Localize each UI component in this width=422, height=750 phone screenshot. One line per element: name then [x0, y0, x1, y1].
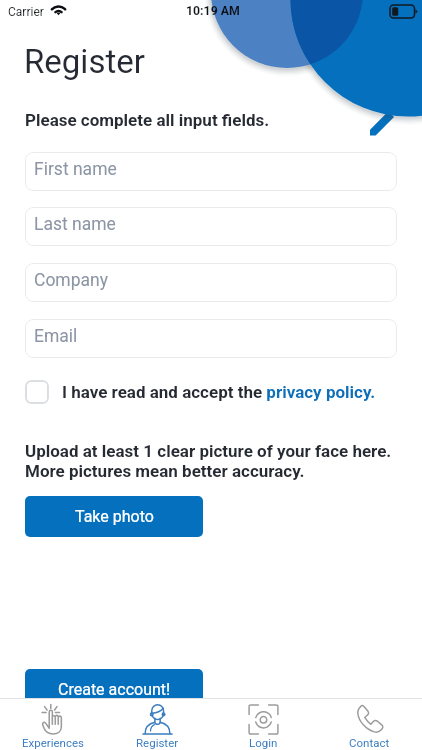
button[interactable]: Experiences — [0, 699, 105, 750]
button[interactable]: Create account! — [25, 669, 203, 710]
button[interactable]: Email — [25, 319, 397, 358]
staticText: Experiences — [22, 736, 84, 749]
button[interactable]: Company — [25, 263, 397, 302]
button[interactable]: Login — [210, 699, 316, 750]
button[interactable]: Register — [105, 699, 210, 750]
staticText: Carrier — [8, 5, 44, 19]
staticText: Register — [136, 736, 179, 749]
staticText: Email — [34, 326, 78, 347]
button[interactable]: Accept privacy policy — [25, 380, 49, 404]
staticText: 10:19 AM — [186, 4, 240, 18]
staticText: More pictures mean better accuracy. — [25, 461, 305, 481]
staticText: Register — [24, 42, 145, 81]
button[interactable]: First name — [25, 152, 397, 191]
staticText: Take photo — [75, 507, 154, 526]
staticText: Last name — [34, 214, 116, 235]
button[interactable]: I have read and accept the privacy polic… — [62, 382, 376, 402]
staticText: Please complete all input fields. — [25, 110, 270, 130]
button[interactable]: Take photo — [25, 496, 203, 537]
staticText: Create account! — [58, 680, 171, 699]
staticText: Upload at least 1 clear picture of your … — [25, 441, 392, 461]
staticText: First name — [34, 159, 117, 180]
staticText: Contact — [349, 736, 390, 749]
staticText: Login — [249, 736, 278, 749]
staticText: Company — [34, 270, 109, 291]
button[interactable]: Last name — [25, 207, 397, 246]
button[interactable]: Contact — [316, 699, 422, 750]
